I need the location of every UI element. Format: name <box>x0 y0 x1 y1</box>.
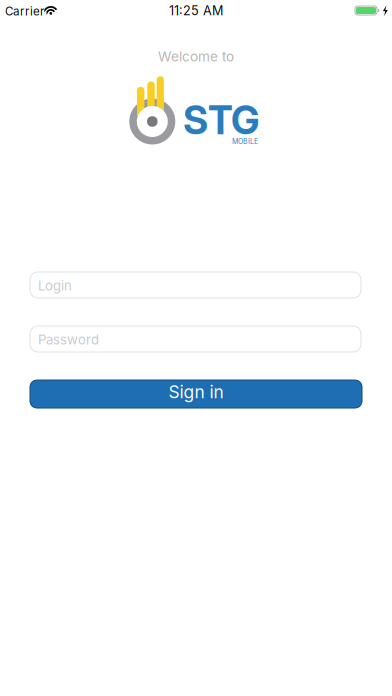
button[interactable]: Login <box>30 272 361 298</box>
staticText: Carrier <box>5 4 44 18</box>
staticText: STG <box>183 97 260 143</box>
button[interactable]: Sign in <box>30 380 362 408</box>
staticText: Welcome to <box>158 48 234 65</box>
staticText: 11:25 AM <box>169 3 223 18</box>
staticText: Sign in <box>168 381 223 402</box>
staticText: Login <box>38 278 72 294</box>
button[interactable]: Password <box>30 326 361 352</box>
staticText: Password <box>38 332 99 348</box>
staticText: MOBILE <box>232 137 258 146</box>
